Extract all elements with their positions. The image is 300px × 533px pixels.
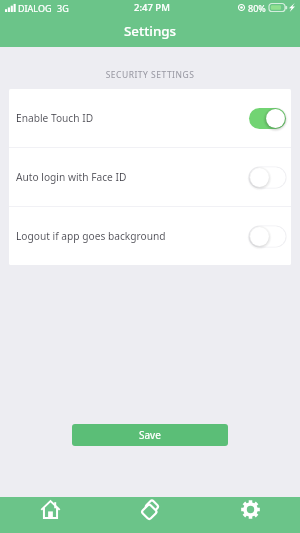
staticText: 80% [248,2,266,14]
button[interactable]: Home [0,497,100,522]
button[interactable]: Auto login with Face ID [9,148,291,206]
button[interactable]: Toggle [249,167,286,188]
button[interactable]: Cards [100,497,200,522]
staticText: SECURITY SETTINGS [0,69,300,81]
button[interactable]: Logout if app goes background [9,207,291,265]
button[interactable]: Enable Touch ID [9,89,291,147]
button[interactable]: Save [72,424,228,446]
button[interactable]: Toggle [249,108,286,129]
staticText: Save [139,428,161,442]
button[interactable]: Toggle [249,226,286,247]
staticText: Auto login with Face ID [16,170,127,184]
staticText: Settings [124,22,177,40]
staticText: DIALOG [18,2,52,14]
staticText: Enable Touch ID [16,111,94,125]
staticText: 3G [57,2,69,14]
staticText: 2:47 PM [134,1,170,14]
staticText: Logout if app goes background [16,229,166,243]
button[interactable]: Settings [200,497,300,522]
